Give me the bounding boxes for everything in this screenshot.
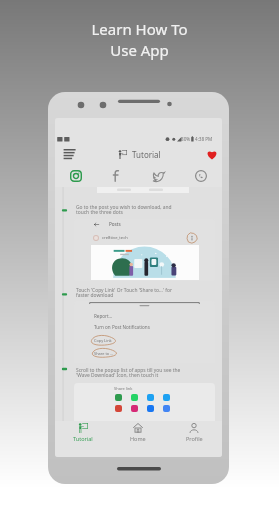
button[interactable]: Other — [158, 404, 174, 413]
button[interactable]: Gmail — [110, 404, 126, 413]
button[interactable]: Facebook — [142, 404, 158, 413]
staticText: Touch 'Copy Link' Or Touch 'Share to...'… — [76, 287, 172, 299]
button[interactable]: Favorite — [206, 149, 218, 160]
button[interactable]: Instagram tab — [55, 165, 96, 187]
button[interactable]: Share to ... — [91, 348, 117, 358]
button[interactable]: Menu — [60, 143, 80, 163]
button[interactable]: Copy Link — [90, 335, 116, 346]
staticText: Profile — [186, 435, 203, 442]
staticText: Tutorial — [73, 435, 93, 442]
staticText: Report... — [94, 313, 113, 319]
button[interactable]: Profile — [166, 421, 222, 457]
button[interactable]: Social tab — [138, 165, 180, 187]
staticText: Share link — [114, 386, 133, 391]
staticText: Learn How To Use App — [0, 19, 279, 61]
staticText: Scroll to the popup list of apps till yo… — [76, 367, 181, 379]
staticText: cre8tive_tech — [102, 235, 128, 241]
staticText: 4:38 PM — [195, 136, 213, 142]
staticText: Home — [130, 435, 146, 442]
staticText: Turn on Post Notifications — [94, 324, 150, 330]
staticText: Posts — [109, 221, 121, 227]
button[interactable]: Wave — [110, 393, 126, 402]
staticText: Copy Link — [94, 338, 112, 343]
staticText: Share to ... — [94, 351, 114, 356]
button[interactable]: Home — [110, 421, 166, 457]
staticText: Tutorial — [132, 149, 161, 160]
button[interactable]: Social tab — [180, 165, 222, 187]
staticText: 80% — [181, 136, 191, 142]
staticText: Go to the post you wish to download, and… — [76, 204, 172, 216]
button[interactable]: WhatsApp — [126, 393, 142, 402]
button[interactable]: Twitter — [142, 393, 158, 402]
button[interactable]: Tutorial — [55, 421, 110, 457]
button[interactable]: Instagram — [126, 404, 142, 413]
button[interactable]: Tweet — [158, 393, 174, 402]
button[interactable]: Social tab — [96, 165, 138, 187]
